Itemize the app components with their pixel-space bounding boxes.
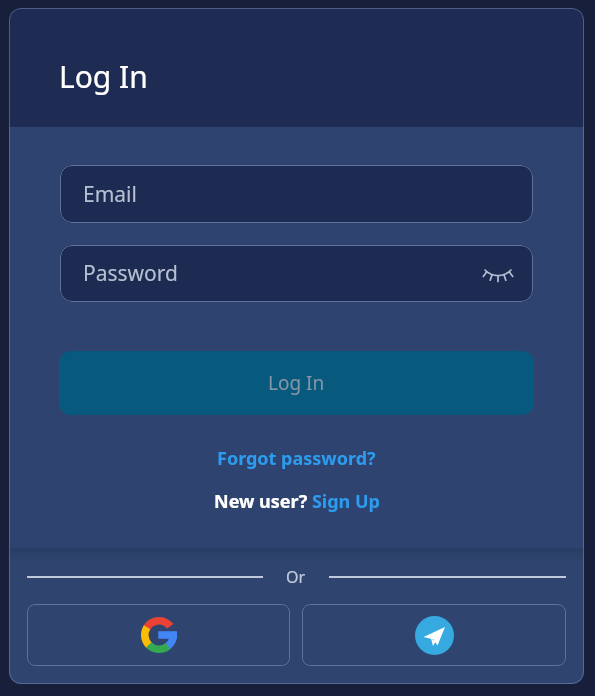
button[interactable]	[27, 604, 290, 666]
staticText: Log In	[268, 370, 325, 396]
staticText: Email	[83, 180, 137, 209]
button[interactable]: Forgot password?	[217, 446, 376, 471]
staticText: Log In	[59, 56, 148, 97]
button[interactable]	[302, 604, 566, 666]
button[interactable]: Email	[60, 165, 533, 223]
staticText: Password	[83, 259, 178, 288]
button[interactable]: New user? Sign Up	[214, 489, 380, 514]
button[interactable]: Log In	[59, 351, 534, 415]
button[interactable]: Password	[60, 245, 533, 302]
staticText: Or	[286, 566, 306, 588]
